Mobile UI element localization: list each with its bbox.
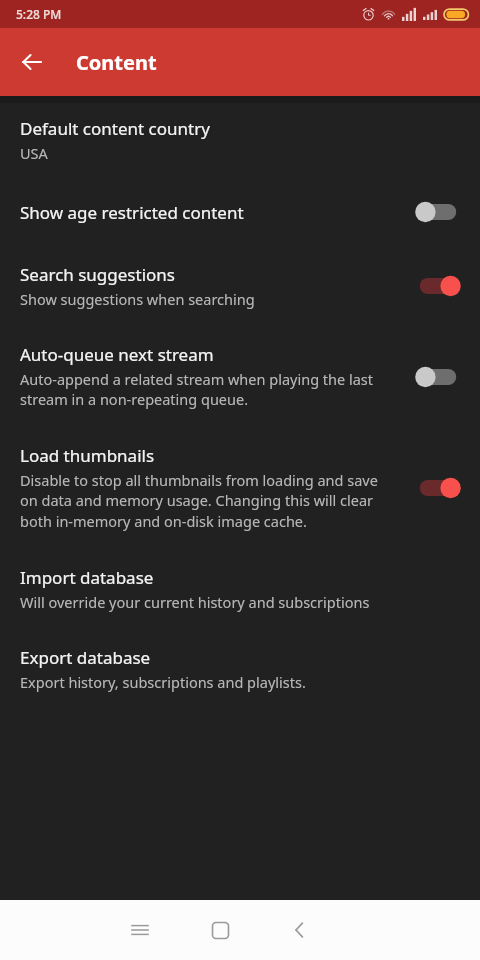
staticText: Auto-append a related stream when playin… bbox=[20, 369, 398, 410]
staticText: Disable to stop all thumbnails from load… bbox=[20, 470, 398, 532]
button[interactable]: Export database bbox=[0, 634, 480, 714]
staticText: Show suggestions when searching bbox=[20, 289, 255, 309]
button[interactable]: Toggle off bbox=[412, 195, 464, 229]
button[interactable]: Toggle on bbox=[412, 269, 464, 303]
staticText: Auto-queue next stream bbox=[20, 343, 214, 366]
button[interactable]: Show age restricted content bbox=[0, 183, 480, 251]
button[interactable]: Back bbox=[8, 38, 56, 86]
button[interactable]: Auto-queue next stream bbox=[0, 331, 480, 432]
staticText: Import database bbox=[20, 566, 154, 589]
staticText: Export database bbox=[20, 646, 151, 669]
button[interactable]: Recent apps bbox=[100, 900, 180, 960]
staticText: Export history, subscriptions and playli… bbox=[20, 672, 306, 692]
staticText: Load thumbnails bbox=[20, 444, 155, 467]
button[interactable]: Back bbox=[260, 900, 340, 960]
staticText: Content bbox=[76, 49, 157, 76]
button[interactable]: Import database bbox=[0, 554, 480, 634]
button[interactable]: Toggle on bbox=[412, 471, 464, 505]
staticText: USA bbox=[20, 143, 48, 163]
button[interactable]: Search suggestions bbox=[0, 251, 480, 331]
button[interactable]: Toggle off bbox=[412, 360, 464, 394]
staticText: Search suggestions bbox=[20, 263, 175, 286]
staticText: Will override your current history and s… bbox=[20, 592, 370, 612]
staticText: 5:28 PM bbox=[16, 6, 62, 22]
button[interactable]: Load thumbnails bbox=[0, 432, 480, 554]
staticText: Default content country bbox=[20, 117, 210, 140]
button[interactable]: Home bbox=[180, 900, 260, 960]
button[interactable]: Default content country bbox=[0, 103, 480, 183]
staticText: Show age restricted content bbox=[20, 201, 244, 224]
